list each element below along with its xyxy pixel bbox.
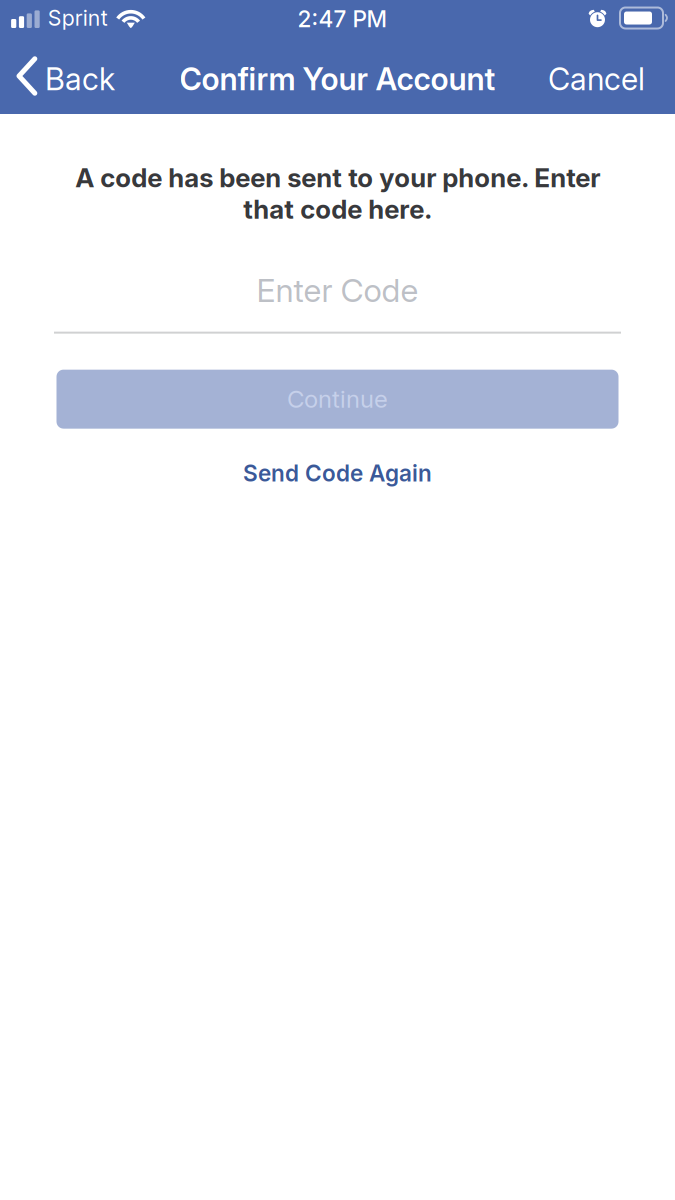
staticText: Sprint xyxy=(48,5,108,31)
staticText: Continue xyxy=(287,385,388,414)
staticText: 2:47 PM xyxy=(297,5,387,33)
button[interactable]: Send Code Again xyxy=(217,449,458,498)
staticText: Send Code Again xyxy=(243,460,432,487)
staticText: Enter Code xyxy=(256,271,418,310)
button[interactable]: Continue xyxy=(56,370,618,429)
button[interactable]: Back xyxy=(0,44,127,114)
staticText: Back xyxy=(45,60,115,97)
button[interactable]: Cancel xyxy=(534,44,675,114)
staticText: Cancel xyxy=(548,60,645,97)
staticText: Confirm Your Account xyxy=(179,60,495,97)
staticText: A code has been sent to your phone. Ente… xyxy=(75,162,600,225)
